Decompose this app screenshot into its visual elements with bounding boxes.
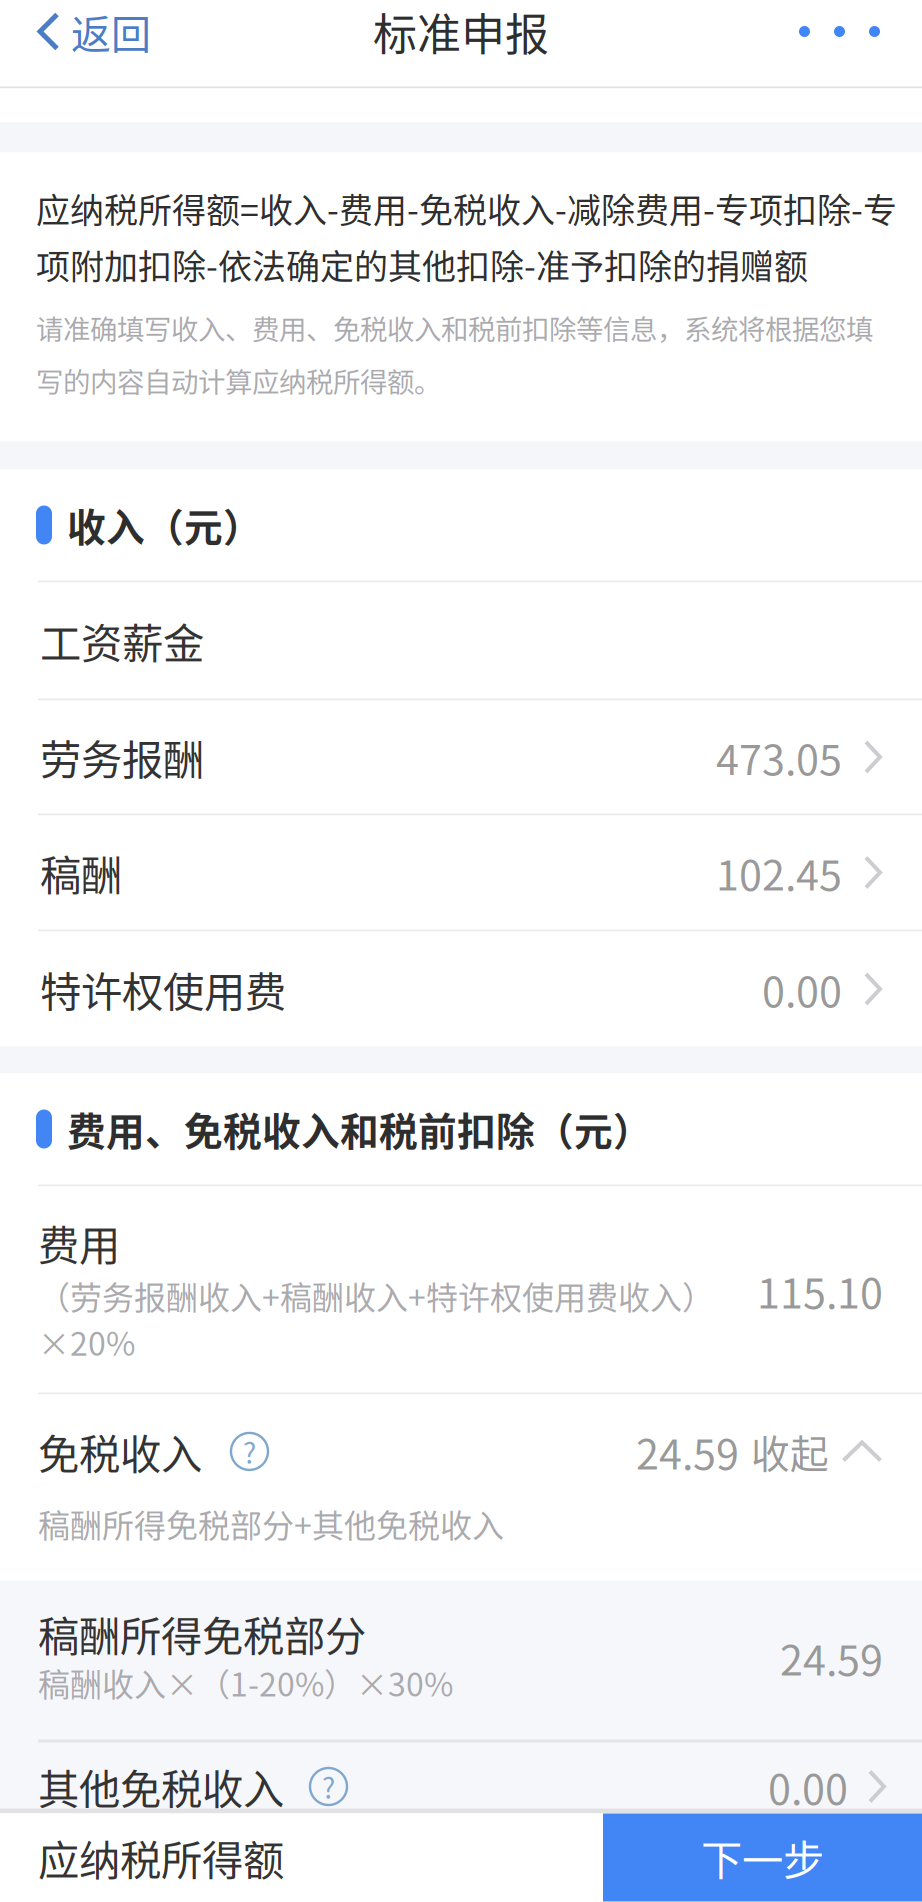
staticText: 24.59 — [636, 1421, 739, 1481]
staticText: 工资薪金 — [40, 611, 204, 670]
staticText: 请准确填写收入、费用、免税收入和税前扣除等信息，系统将根据您填 — [36, 308, 873, 348]
staticText: 项附加扣除-依法确定的其他扣除-准予扣除的捐赠额 — [36, 240, 808, 289]
staticText: 收入（元） — [67, 497, 262, 553]
staticText: ? — [243, 1431, 256, 1472]
staticText: 劳务报酬 — [40, 727, 204, 787]
staticText: 返回 — [71, 2, 151, 60]
button[interactable]: 工资薪金 — [0, 582, 922, 698]
staticText: 其他免税收入 — [38, 1757, 284, 1816]
staticText: 稿酬 — [40, 843, 122, 902]
button[interactable]: 劳务报酬 — [0, 700, 922, 813]
staticText: 收起 — [751, 1423, 829, 1479]
staticText: 473.05 — [716, 727, 842, 787]
staticText: 特许权使用费 — [40, 959, 286, 1019]
staticText: 115.10 — [757, 1260, 883, 1320]
button[interactable]: 返回 — [0, 0, 175, 62]
staticText: 费用、免税收入和税前扣除（元） — [67, 1101, 652, 1157]
button[interactable]: 其他免税收入 — [0, 1742, 922, 1808]
staticText: 0.00 — [768, 1757, 848, 1816]
staticText: 下一步 — [701, 1828, 824, 1887]
staticText: 费用 — [38, 1212, 120, 1272]
button[interactable]: 特许权使用费 — [0, 931, 922, 1046]
staticText: 写的内容自动计算应纳税所得额。 — [36, 361, 441, 400]
staticText: 稿酬所得免税部分+其他免税收入 — [38, 1500, 504, 1547]
button[interactable]: 免税收入 — [0, 1394, 922, 1580]
staticText: （劳务报酬收入+稿酬收入+特许权使用费收入） — [38, 1272, 714, 1319]
button[interactable]: 稿酬所得免税部分 — [0, 1580, 922, 1739]
staticText: 免税收入 — [38, 1421, 202, 1481]
staticText: 应纳税所得额=收入-费用-免税收入-减除费用-专项扣除-专 — [36, 183, 897, 233]
staticText: ×20% — [38, 1319, 135, 1365]
staticText: 24.59 — [780, 1627, 883, 1687]
button[interactable]: 更多 — [775, 0, 922, 62]
staticText: 稿酬收入×（1-20%）×30% — [38, 1659, 453, 1706]
staticText: ? — [322, 1766, 335, 1807]
staticText: 稿酬所得免税部分 — [38, 1603, 366, 1663]
button[interactable]: 费用 — [0, 1186, 922, 1392]
staticText: 应纳税所得额 — [38, 1828, 284, 1887]
staticText: 0.00 — [762, 959, 842, 1019]
staticText: 标准申报 — [373, 0, 549, 63]
staticText: 102.45 — [716, 843, 842, 902]
button[interactable]: 稿酬 — [0, 815, 922, 929]
button[interactable]: 下一步 — [603, 1813, 922, 1901]
